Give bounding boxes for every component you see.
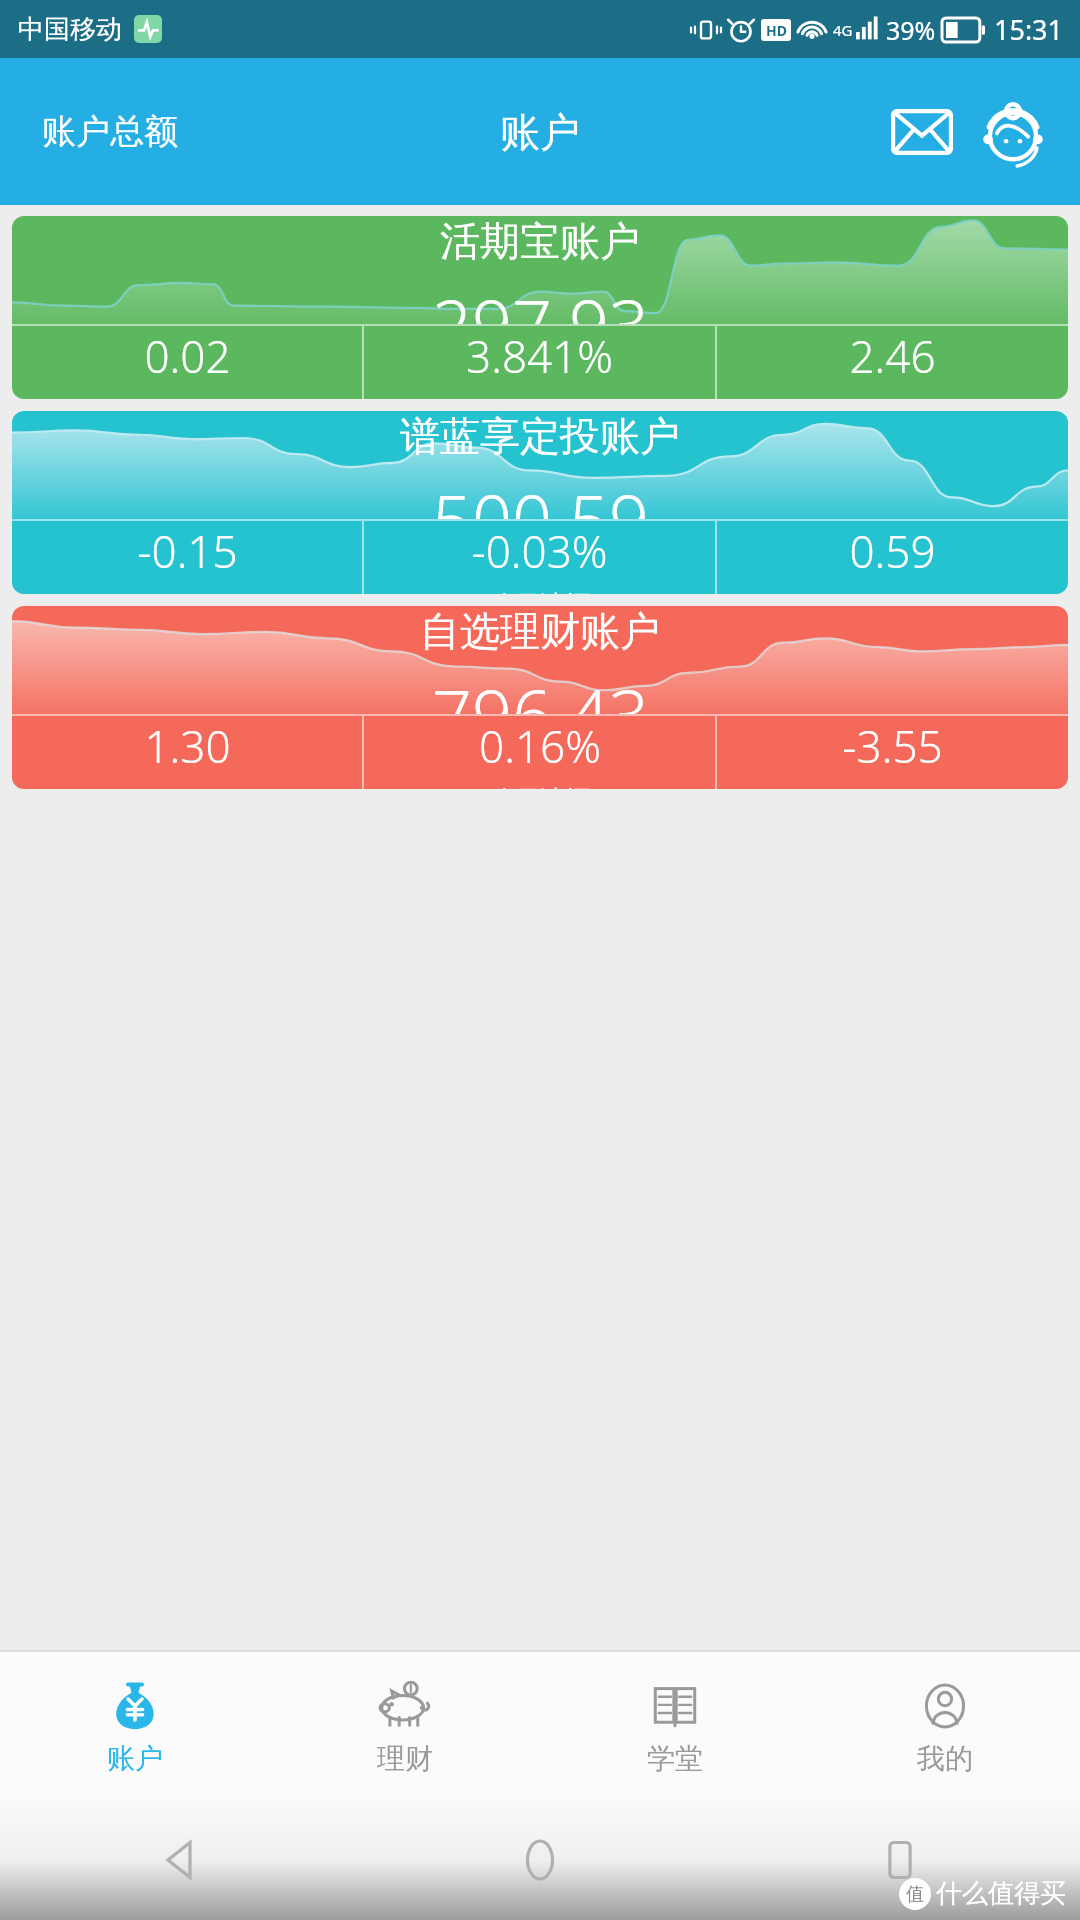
staticText: 0.59 <box>849 521 936 581</box>
staticText: -3.55 <box>842 716 943 776</box>
staticText: 15:31 <box>994 11 1064 48</box>
button[interactable]: Messages <box>882 92 962 172</box>
button[interactable]: Customer service <box>970 89 1056 175</box>
button[interactable]: 账户 <box>0 1652 270 1800</box>
staticText: 2.46 <box>849 326 936 386</box>
staticText: 297.93 <box>432 276 649 324</box>
staticText: 活期宝账户 <box>440 216 640 266</box>
staticText: 500.59 <box>432 471 649 519</box>
staticText: 理财 <box>377 1741 433 1776</box>
staticText: 796.43 <box>432 666 649 714</box>
staticText: 自选理财账户 <box>420 606 660 656</box>
staticText: 账户总额 <box>42 110 178 153</box>
button[interactable]: 账户总额 <box>30 100 190 163</box>
button[interactable]: 0.02 <box>12 326 362 399</box>
button[interactable]: -3.55 <box>717 716 1068 789</box>
staticText: 什么值得买 <box>936 1877 1066 1910</box>
button[interactable]: 我的 <box>810 1652 1080 1800</box>
button[interactable]: 3.841% <box>364 326 715 399</box>
staticText: 39% <box>886 13 936 47</box>
staticText: 0.02 <box>144 326 231 386</box>
button[interactable]: Recents <box>720 1800 1080 1920</box>
staticText: 昨日涨幅 <box>490 784 590 789</box>
button[interactable]: 学堂 <box>540 1652 810 1800</box>
staticText: 学堂 <box>647 1741 703 1776</box>
staticText: -0.15 <box>137 521 238 581</box>
button[interactable]: 自选理财账户 <box>12 606 1068 789</box>
staticText: 1.30 <box>144 716 231 776</box>
button[interactable]: 2.46 <box>717 326 1068 399</box>
staticText: 账户 <box>107 1741 163 1776</box>
button[interactable]: -0.15 <box>12 521 362 594</box>
staticText: 3.841% <box>466 326 613 386</box>
button[interactable]: Home <box>360 1800 720 1920</box>
staticText: 我的 <box>917 1741 973 1776</box>
button[interactable]: Back <box>0 1800 360 1920</box>
button[interactable]: 活期宝账户 <box>12 216 1068 399</box>
button[interactable]: 1.30 <box>12 716 362 789</box>
button[interactable]: -0.03% <box>364 521 715 594</box>
staticText: 中国移动 <box>18 13 122 46</box>
staticText: 账户 <box>500 107 580 157</box>
staticText: 谱蓝享定投账户 <box>400 411 680 461</box>
staticText: 0.16% <box>479 716 601 776</box>
staticText: 昨日涨幅 <box>490 589 590 594</box>
button[interactable]: 理财 <box>270 1652 540 1800</box>
button[interactable]: 谱蓝享定投账户 <box>12 411 1068 594</box>
button[interactable]: 0.59 <box>717 521 1068 594</box>
staticText: HD <box>766 21 787 40</box>
staticText: -0.03% <box>471 521 608 581</box>
staticText: 4G <box>833 20 853 40</box>
button[interactable]: 0.16% <box>364 716 715 789</box>
staticText: 值 <box>906 1883 924 1906</box>
